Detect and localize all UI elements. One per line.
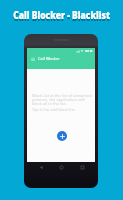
staticText: Black List is the list of unwanted perso… bbox=[32, 93, 92, 107]
button[interactable]: Menu bbox=[30, 56, 35, 61]
button[interactable]: Call Blocker - Blacklist bbox=[0, 8, 123, 23]
staticText: Call Blocker bbox=[38, 56, 60, 61]
button[interactable]: Back bbox=[37, 163, 45, 171]
staticText: Call Blocker - Blacklist bbox=[0, 8, 123, 23]
button[interactable]: Recents bbox=[78, 163, 86, 171]
staticText: Call Blocker - Blacklist bbox=[0, 10, 123, 24]
button[interactable]: Home bbox=[57, 163, 65, 171]
staticText: Tap (+) to add black list bbox=[32, 107, 75, 112]
button[interactable]: Add bbox=[57, 131, 67, 141]
